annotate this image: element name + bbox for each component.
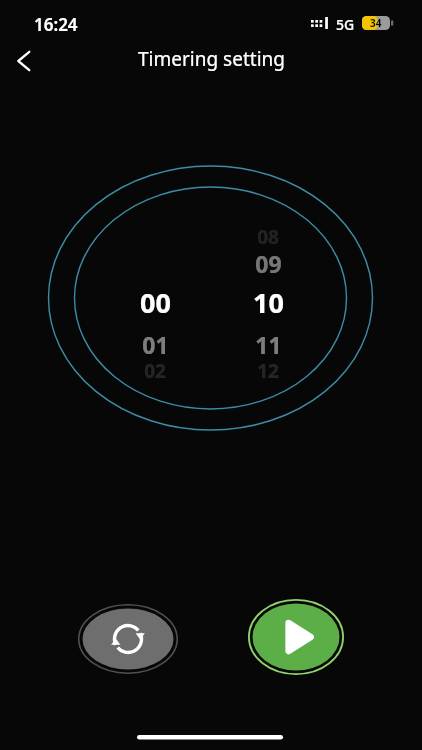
button[interactable]: 12 bbox=[228, 351, 308, 391]
staticText: 11 bbox=[255, 329, 282, 360]
button[interactable]: 09 bbox=[228, 243, 308, 283]
staticText: 34 bbox=[370, 16, 382, 30]
button[interactable]: 01 bbox=[115, 324, 195, 364]
button[interactable]: Start timer bbox=[248, 599, 344, 675]
staticText: 5G bbox=[336, 15, 355, 34]
staticText: Timering setting bbox=[138, 46, 285, 72]
staticText: 00 bbox=[140, 284, 171, 321]
button[interactable]: Back bbox=[2, 39, 46, 83]
button[interactable]: 00 bbox=[115, 282, 195, 322]
button[interactable]: Reset timer bbox=[78, 604, 178, 674]
button[interactable]: 10 bbox=[228, 282, 308, 322]
staticText: 12 bbox=[257, 358, 279, 384]
staticText: 01 bbox=[142, 329, 169, 360]
staticText: 09 bbox=[255, 248, 282, 279]
button[interactable]: 11 bbox=[228, 324, 308, 364]
staticText: 16:24 bbox=[34, 13, 78, 36]
staticText: 08 bbox=[257, 224, 279, 250]
staticText: 02 bbox=[144, 358, 166, 384]
button[interactable]: 08 bbox=[228, 217, 308, 257]
button[interactable]: 02 bbox=[115, 351, 195, 391]
staticText: 10 bbox=[253, 284, 284, 321]
